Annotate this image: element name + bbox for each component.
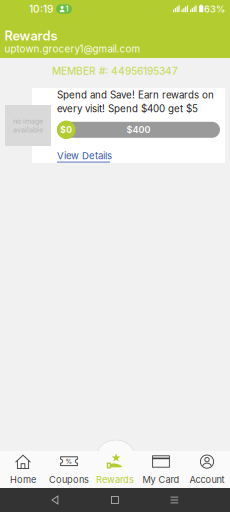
staticText: Coupons xyxy=(49,474,89,485)
button[interactable]: Home xyxy=(111,495,119,504)
button[interactable]: Account xyxy=(184,451,230,488)
staticText: $400 xyxy=(126,124,150,135)
button[interactable]: Rewards xyxy=(92,451,138,488)
staticText: View Details xyxy=(57,150,112,162)
staticText: no image xyxy=(13,117,43,125)
staticText: uptown.grocery1@gmail.com xyxy=(4,43,140,55)
staticText: Rewards xyxy=(4,28,57,43)
staticText: 63% xyxy=(204,3,225,15)
staticText: Rewards xyxy=(96,474,134,485)
button[interactable]: Recent apps xyxy=(170,495,179,504)
button[interactable]: % xyxy=(46,451,92,488)
staticText: My Card xyxy=(142,474,179,485)
staticText: Account xyxy=(189,474,224,485)
staticText: Spend and Save! Earn rewards on xyxy=(57,89,214,101)
staticText: Home xyxy=(10,474,36,485)
button[interactable]: My Card xyxy=(138,451,184,488)
staticText: $0 xyxy=(60,125,72,135)
staticText: % xyxy=(65,457,72,465)
staticText: every visit! Spend $400 get $5 xyxy=(57,103,198,115)
staticText: 1 xyxy=(65,5,68,13)
staticText: MEMBER #: 44956195347 xyxy=(52,65,178,77)
staticText: 10:19 xyxy=(29,3,53,15)
button[interactable]: Home xyxy=(0,451,46,488)
button[interactable]: View Details xyxy=(57,150,112,163)
staticText: available xyxy=(13,125,43,134)
button[interactable]: Back xyxy=(51,495,59,504)
